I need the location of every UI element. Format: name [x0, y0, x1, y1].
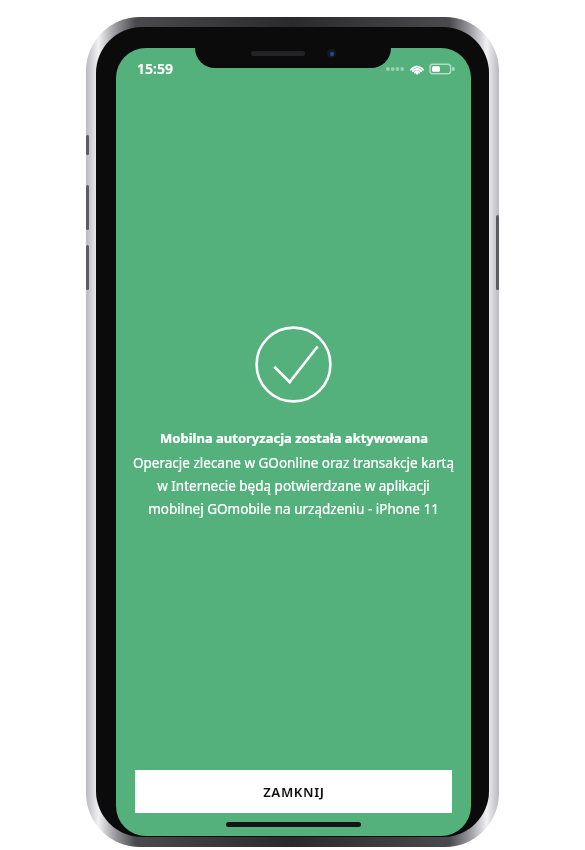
staticText: mobilnej GOmobile na urządzeniu - iPhone… — [148, 500, 439, 518]
other: Success — [254, 325, 333, 404]
button[interactable]: ZAMKNIJ — [135, 770, 452, 813]
staticText: ZAMKNIJ — [263, 783, 325, 801]
staticText: Mobilna autoryzacja została aktywowana — [160, 429, 428, 447]
staticText: 15:59 — [137, 59, 173, 78]
staticText: Operacje zlecane w GOonline oraz transak… — [133, 454, 454, 472]
staticText: w Internecie będą potwierdzane w aplikac… — [157, 477, 430, 495]
